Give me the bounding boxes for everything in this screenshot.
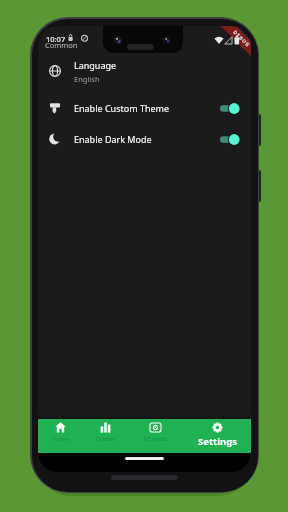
staticText: DEBUG (231, 29, 251, 49)
button[interactable]: Settings (183, 419, 251, 453)
staticText: 3D Audio (143, 435, 169, 443)
button[interactable]: Create (83, 419, 128, 453)
button[interactable]: Enable Custom Theme (38, 92, 251, 124)
staticText: Enable Dark Mode (74, 133, 152, 145)
staticText: English (74, 74, 100, 84)
staticText: Enable Custom Theme (74, 102, 170, 114)
staticText: 10:07 (46, 34, 66, 44)
staticText: Create (96, 435, 115, 443)
button[interactable]: 3D Audio (128, 419, 183, 453)
button[interactable]: Enable Dark Mode (38, 124, 251, 154)
staticText: Home (52, 435, 70, 443)
button[interactable]: Home (38, 419, 83, 453)
staticText: Settings (198, 435, 237, 448)
staticText: Common (45, 40, 78, 50)
button[interactable]: Language (38, 50, 251, 92)
staticText: Language (74, 59, 117, 71)
